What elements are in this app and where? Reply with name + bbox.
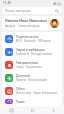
staticText: Громкость · Мелодия звонка (16, 52, 52, 56)
staticText: Аккаунт · Синхронизация (5, 24, 40, 28)
button[interactable]: Обои (2, 84, 62, 97)
button[interactable]: Звуки и вибрация (2, 45, 62, 58)
staticText: Фон и стиль · Экран блокировки (16, 91, 57, 95)
button[interactable]: Home (22, 106, 43, 114)
button[interactable]: Дисплей (2, 71, 62, 84)
staticText: Подключения (16, 34, 39, 38)
button[interactable]: Темы (2, 97, 62, 106)
button[interactable]: Уведомления (2, 58, 62, 71)
staticText: Статус · Разрешения (16, 65, 42, 69)
staticText: Поиск настроек (5, 8, 31, 13)
other: Search (55, 9, 59, 13)
button[interactable]: Поиск настроек (2, 7, 62, 14)
staticText: Яркость · Ночной режим (16, 78, 47, 82)
staticText: Уведомления (16, 60, 38, 64)
staticText: Обои (16, 86, 25, 90)
staticText: Темы (16, 99, 25, 103)
staticText: Иванов Иван Иванович (5, 18, 48, 23)
staticText: Дисплей (16, 73, 30, 77)
button[interactable]: Back (43, 106, 64, 114)
staticText: Wi-Fi · Bluetooth · SIM-карты (16, 39, 52, 43)
button[interactable]: Иванов Иван Иванович (2, 16, 62, 30)
staticText: Звуки и вибрация (16, 47, 45, 51)
button[interactable]: Подключения (2, 32, 62, 45)
button[interactable]: Recents (0, 106, 22, 114)
staticText: 11:45 (3, 1, 12, 5)
